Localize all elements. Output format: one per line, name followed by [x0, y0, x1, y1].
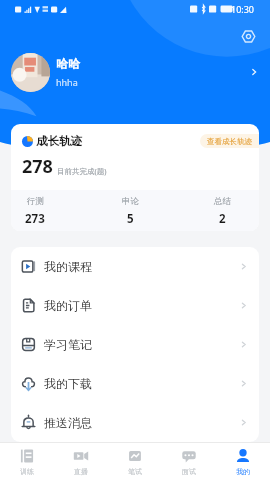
staticText: 278 [22, 154, 53, 179]
button[interactable]: 哈哈 [0, 52, 270, 92]
staticText: 成长轨迹 [36, 134, 82, 148]
button[interactable]: 训练 [0, 443, 54, 480]
staticText: 面试 [182, 467, 196, 476]
staticText: 我的课程 [44, 259, 92, 274]
button[interactable]: 推送消息 [11, 403, 259, 442]
staticText: 总结 [214, 196, 231, 207]
staticText: hhha [56, 76, 78, 88]
staticText: 推送消息 [44, 415, 92, 430]
staticText: 2 [219, 211, 226, 227]
button[interactable]: 笔试 [108, 443, 162, 480]
button[interactable]: 面试 [162, 443, 216, 480]
button[interactable]: 我的 [216, 443, 270, 480]
staticText: 我的下载 [44, 376, 92, 391]
button[interactable]: 我的订单 [11, 286, 259, 325]
button[interactable]: 直播 [54, 443, 108, 480]
staticText: 行测 [27, 196, 44, 207]
button[interactable]: 查看成长轨迹 [200, 134, 259, 148]
staticText: 10:30 [231, 3, 255, 15]
staticText: 申论 [122, 196, 139, 207]
staticText: 目前共完成(题) [57, 166, 107, 176]
staticText: 5 [127, 211, 134, 227]
staticText: 查看成长轨迹 [207, 137, 252, 146]
staticText: 训练 [20, 467, 34, 476]
staticText: 273 [25, 211, 45, 227]
button[interactable]: 我的下载 [11, 364, 259, 403]
staticText: 直播 [74, 467, 88, 476]
staticText: 哈哈 [56, 56, 80, 71]
staticText: 笔试 [128, 467, 142, 476]
staticText: 学习笔记 [44, 337, 92, 352]
staticText: 我的 [236, 467, 250, 476]
button[interactable]: Settings [237, 25, 259, 47]
staticText: 我的订单 [44, 298, 92, 313]
button[interactable]: 学习笔记 [11, 325, 259, 364]
button[interactable]: 我的课程 [11, 247, 259, 286]
